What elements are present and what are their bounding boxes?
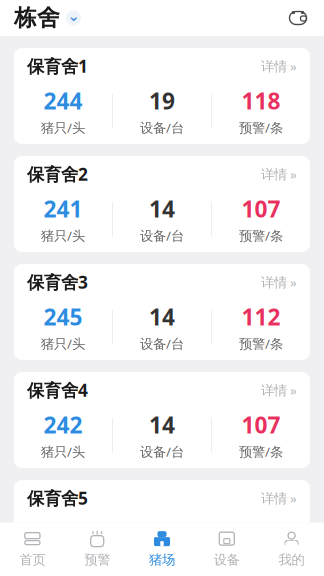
staticText: 详情 » [261,489,297,507]
button[interactable]: 猪场 [286,8,310,28]
staticText: 详情 » [261,381,297,399]
staticText: 栋舍 [14,4,60,32]
staticText: 详情 » [261,165,297,183]
staticText: 预警/条 [239,335,283,352]
staticText: 我的 [279,552,305,568]
staticText: 保育舍4 [27,379,88,402]
staticText: 保育舍3 [27,271,88,294]
button[interactable]: 我的 [259,523,324,576]
staticText: 猪只/头 [41,551,85,568]
staticText: 118 [241,86,280,116]
button[interactable]: 栋舍 [14,4,81,32]
staticText: 猪只/头 [41,335,85,352]
staticText: 预警/条 [239,119,283,136]
staticText: 猪只/头 [41,443,85,460]
staticText: 14 [149,410,175,440]
staticText: 设备/台 [140,551,184,568]
staticText: 猪场 [149,552,175,568]
staticText: 242 [43,410,82,440]
staticText: 设备/台 [140,119,184,136]
staticText: 15 [149,518,175,548]
button[interactable]: 首页 [0,523,65,576]
staticText: 预警 [84,552,110,568]
staticText: 设备/台 [140,443,184,460]
staticText: 预警/条 [239,551,283,568]
staticText: 猪只/头 [41,119,85,136]
staticText: 19 [149,86,175,116]
staticText: 设备/台 [140,227,184,244]
staticText: 241 [43,194,82,224]
staticText: 设备 [214,552,240,568]
staticText: 保育舍5 [27,487,88,510]
button[interactable]: 保育舍1 [14,48,310,144]
staticText: ⌄ [67,8,79,24]
staticText: 保育舍2 [27,163,88,186]
staticText: 预警/条 [239,443,283,460]
button[interactable]: 设备 [194,523,259,576]
staticText: 112 [241,302,280,332]
staticText: 详情 » [261,57,297,75]
staticText: 猪只/头 [41,227,85,244]
staticText: 设备/台 [140,335,184,352]
button[interactable]: 保育舍2 [14,156,310,252]
staticText: 详情 » [261,273,297,291]
button[interactable]: 猪场 [130,523,194,576]
staticText: 14 [149,302,175,332]
staticText: 首页 [19,552,45,568]
button[interactable]: 保育舍4 [14,372,310,468]
button[interactable]: 预警 [65,523,130,576]
button[interactable]: 保育舍3 [14,264,310,360]
staticText: 预警/条 [239,227,283,244]
button[interactable]: 保育舍5 [14,480,310,576]
staticText: 107 [241,194,280,224]
staticText: 107 [241,410,280,440]
staticText: 14 [149,194,175,224]
staticText: 245 [43,302,82,332]
staticText: 244 [43,86,82,116]
staticText: 保育舍1 [27,55,88,78]
